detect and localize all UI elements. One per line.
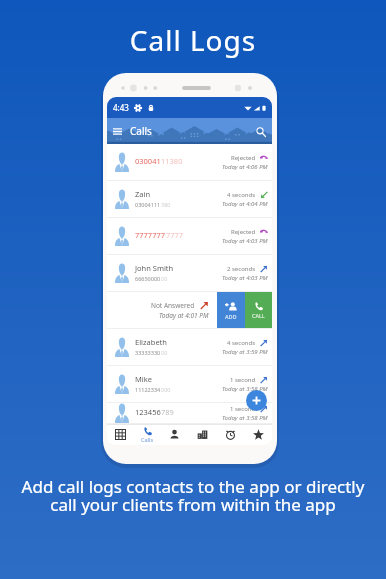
button[interactable]: Menu bbox=[111, 125, 124, 138]
staticText: 4:43 bbox=[113, 102, 129, 113]
button[interactable]: Zain bbox=[107, 181, 272, 218]
staticText: 03004111 bbox=[135, 201, 161, 208]
staticText: 2 seconds bbox=[227, 265, 256, 273]
staticText: 000 bbox=[161, 386, 171, 393]
staticText: 00 bbox=[161, 349, 168, 356]
staticText: Calls bbox=[141, 436, 154, 443]
staticText: 380 bbox=[161, 201, 171, 208]
staticText: 123456 bbox=[135, 407, 161, 417]
staticText: 030041 bbox=[135, 156, 161, 166]
button[interactable]: 7777777 bbox=[107, 218, 272, 255]
staticText: Elizabeth bbox=[135, 337, 167, 347]
staticText: 1 second bbox=[230, 405, 256, 413]
staticText: Add call logs contacts to the app or dir… bbox=[0, 475, 386, 516]
staticText: Mike bbox=[135, 374, 152, 384]
staticText: 11380 bbox=[161, 156, 183, 166]
button[interactable]: Favorites bbox=[244, 424, 272, 445]
staticText: Call Logs bbox=[0, 21, 386, 59]
staticText: 11122334 bbox=[135, 386, 161, 393]
button[interactable]: Business bbox=[188, 424, 216, 445]
button[interactable]: 030041 bbox=[107, 144, 272, 181]
button[interactable]: 123456 bbox=[107, 403, 272, 424]
button[interactable]: CALL bbox=[245, 292, 272, 328]
staticText: Today at 4:06 PM bbox=[222, 163, 268, 171]
staticText: Not Answered bbox=[151, 301, 195, 310]
staticText: Rejected bbox=[231, 228, 256, 236]
button[interactable]: Alarm bbox=[216, 424, 244, 445]
staticText: Zain bbox=[135, 189, 151, 199]
staticText: 1 second bbox=[230, 376, 256, 384]
staticText: Rejected bbox=[231, 154, 256, 162]
button[interactable]: New call bbox=[246, 390, 267, 411]
staticText: Today at 3:59 PM bbox=[222, 348, 268, 356]
button[interactable]: John Smith bbox=[107, 255, 272, 292]
button[interactable]: Calls bbox=[134, 424, 161, 445]
staticText: 4 seconds bbox=[227, 191, 256, 199]
button[interactable]: Dialpad bbox=[107, 424, 134, 445]
staticText: Calls bbox=[130, 124, 152, 138]
staticText: John Smith bbox=[135, 263, 174, 273]
staticText: 7777 bbox=[166, 230, 184, 240]
staticText: Today at 3:58 PM bbox=[222, 385, 268, 393]
staticText: Today at 3:58 PM bbox=[222, 414, 268, 422]
staticText: Today at 4:04 PM bbox=[222, 200, 268, 208]
staticText: 7777777 bbox=[135, 230, 166, 240]
staticText: Today at 4:03 PM bbox=[222, 237, 268, 245]
button[interactable]: Search bbox=[254, 125, 267, 138]
button[interactable]: Elizabeth bbox=[107, 329, 272, 366]
staticText: 4 seconds bbox=[227, 339, 256, 347]
staticText: ADD bbox=[225, 313, 237, 320]
staticText: 66650000 bbox=[135, 275, 161, 282]
staticText: 00 bbox=[161, 275, 168, 282]
button[interactable]: Contacts bbox=[161, 424, 188, 445]
staticText: 789 bbox=[161, 407, 174, 417]
staticText: CALL bbox=[252, 312, 265, 319]
staticText: 33333330 bbox=[135, 349, 161, 356]
staticText: Today at 4:01 PM bbox=[159, 311, 209, 320]
staticText: Today at 4:03 PM bbox=[222, 274, 268, 282]
button[interactable]: ADD bbox=[217, 292, 245, 328]
button[interactable]: Mike bbox=[107, 366, 272, 403]
